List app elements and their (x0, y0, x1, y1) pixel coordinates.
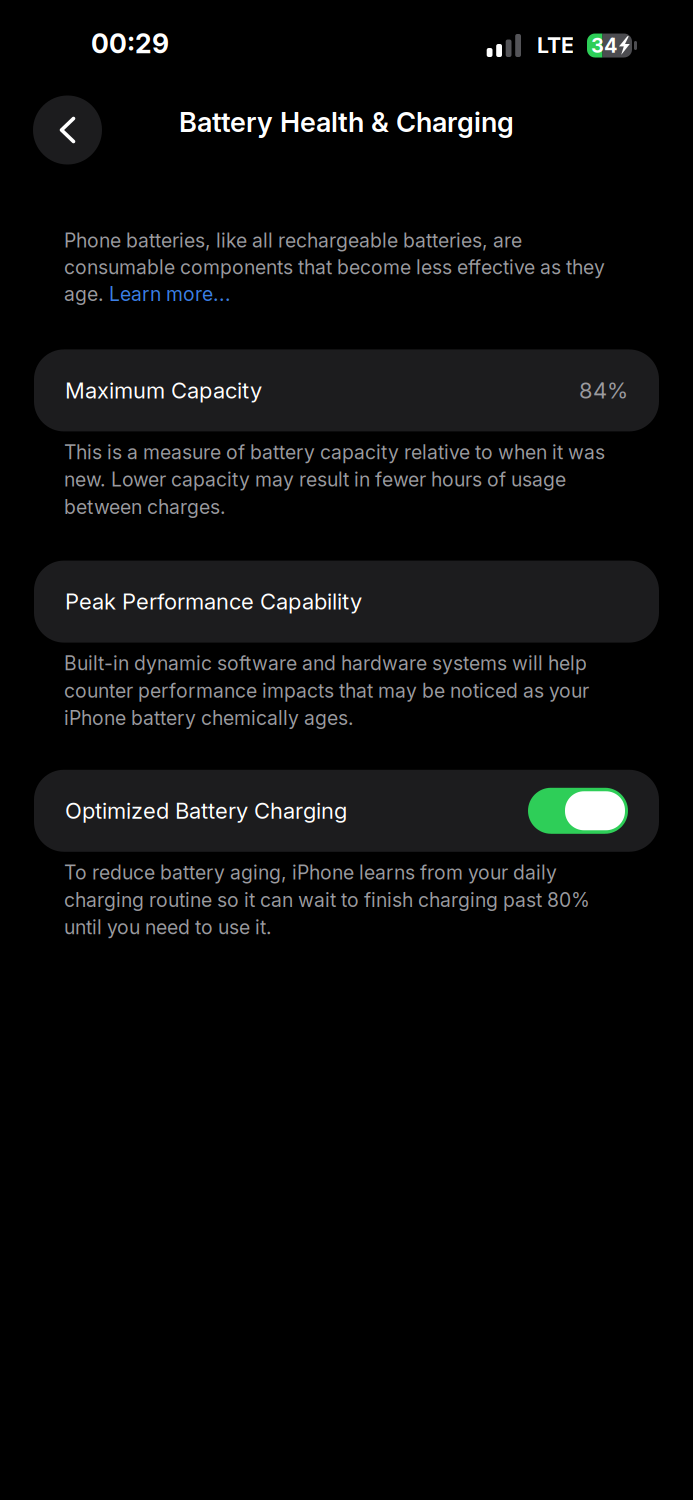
button[interactable]: Maximum Capacity (34, 349, 659, 431)
staticText: To reduce battery aging, iPhone learns f… (64, 861, 590, 939)
staticText: Phone batteries, like all rechargeable b… (64, 229, 605, 305)
staticText: 34 (591, 33, 618, 58)
staticText: Optimized Battery Charging (65, 797, 347, 824)
staticText: 84% (579, 377, 628, 404)
staticText: 00:29 (91, 27, 169, 60)
button[interactable]: Optimized Battery Charging (528, 788, 628, 834)
staticText: Maximum Capacity (65, 377, 262, 404)
button[interactable]: Back (33, 95, 102, 164)
staticText: Peak Performance Capability (65, 588, 362, 615)
staticText: Battery Health & Charging (179, 105, 514, 139)
button[interactable]: Learn more (111, 281, 231, 305)
button[interactable]: Peak Performance Capability (34, 561, 659, 643)
staticText: This is a measure of battery capacity re… (64, 440, 605, 519)
staticText: Built-in dynamic software and hardware s… (64, 652, 589, 730)
staticText: LTE (537, 33, 574, 58)
